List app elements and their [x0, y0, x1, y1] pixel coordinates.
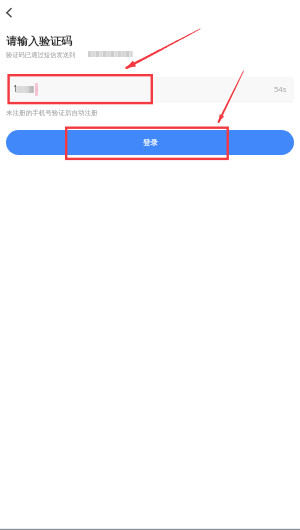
- staticText: 登录: [143, 138, 158, 147]
- button[interactable]: Back: [0, 3, 18, 21]
- staticText: 54s: [274, 84, 287, 94]
- staticText: 请输入验证码: [6, 34, 72, 48]
- button[interactable]: [6, 77, 294, 103]
- staticText: 未注册的手机号验证后自动注册: [6, 109, 98, 117]
- button[interactable]: 登录: [6, 130, 294, 155]
- staticText: 验证码已通过短信发送到: [6, 51, 76, 59]
- staticText: 1: [13, 83, 18, 95]
